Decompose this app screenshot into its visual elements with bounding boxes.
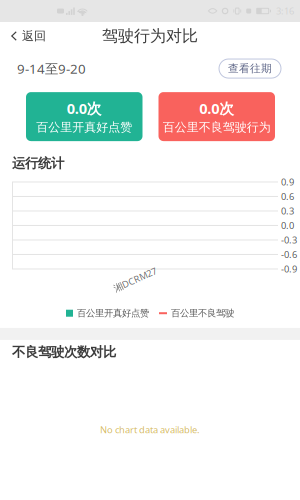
staticText: No chart data available.	[100, 423, 200, 436]
button[interactable]: 查看往期	[219, 59, 281, 78]
staticText: 0.3	[281, 205, 294, 217]
staticText: 9-14至9-20	[17, 60, 86, 77]
staticText: -0.9	[281, 263, 297, 275]
staticText: 百公里开真好点赞	[36, 120, 132, 135]
staticText: 百公里开真好点赞	[77, 307, 149, 319]
staticText: -0.3	[281, 234, 297, 246]
staticText: -0.6	[281, 248, 297, 261]
staticText: 3:16	[276, 5, 294, 17]
button[interactable]: 返回	[0, 22, 54, 50]
staticText: 0.0次	[199, 98, 234, 118]
staticText: 百公里不良驾驶行为	[163, 120, 271, 135]
staticText: 驾驶行为对比	[102, 26, 198, 46]
staticText: 查看往期	[228, 62, 272, 75]
staticText: 返回	[22, 29, 46, 43]
staticText: 0.0次	[67, 98, 102, 118]
staticText: 百公里不良驾驶	[171, 307, 234, 319]
staticText: 不良驾驶次数对比	[12, 344, 116, 360]
staticText: 0.0	[281, 219, 294, 232]
staticText: 运行统计	[12, 155, 64, 171]
button[interactable]: 0.0次	[158, 92, 275, 141]
staticText: 0.9	[281, 176, 294, 188]
button[interactable]: 0.0次	[26, 92, 142, 141]
staticText: 湘DCRM27	[112, 273, 158, 286]
staticText: 0.6	[281, 190, 294, 203]
